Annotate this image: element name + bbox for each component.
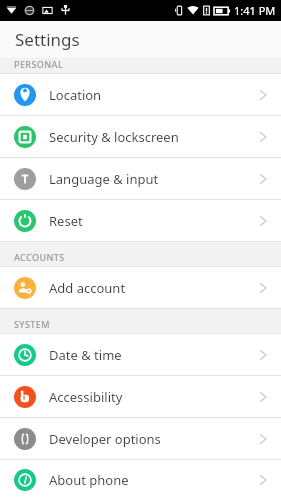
- button[interactable]: Accessibility: [0, 376, 281, 417]
- staticText: 1:41 PM: [234, 3, 276, 18]
- staticText: Location: [49, 86, 259, 104]
- staticText: Date & time: [49, 346, 259, 364]
- button[interactable]: Language & input: [0, 158, 281, 199]
- staticText: Security & lockscreen: [49, 128, 259, 146]
- staticText: Add account: [49, 279, 259, 297]
- staticText: Developer options: [49, 430, 259, 448]
- staticText: Language & input: [49, 170, 259, 188]
- staticText: Accessibility: [49, 388, 259, 406]
- button[interactable]: Add account: [0, 267, 281, 308]
- button[interactable]: Security & lockscreen: [0, 116, 281, 157]
- button[interactable]: About phone: [0, 460, 281, 500]
- staticText: Settings: [15, 28, 80, 51]
- button[interactable]: Reset: [0, 200, 281, 241]
- staticText: SYSTEM: [14, 318, 50, 330]
- staticText: PERSONAL: [14, 58, 64, 70]
- staticText: About phone: [49, 471, 259, 489]
- button[interactable]: Developer options: [0, 418, 281, 459]
- staticText: ACCOUNTS: [14, 251, 65, 263]
- button[interactable]: Location: [0, 74, 281, 115]
- button[interactable]: Date & time: [0, 334, 281, 375]
- staticText: Reset: [49, 212, 259, 230]
